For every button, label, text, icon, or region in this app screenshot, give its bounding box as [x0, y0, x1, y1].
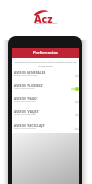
staticText: recibir avisos de pago	[14, 100, 36, 103]
button[interactable]: AVISOS 'RECICLAJE'	[12, 122, 79, 135]
button[interactable]: Toggle notifications	[71, 74, 79, 78]
staticText: Preferencias	[33, 50, 58, 56]
button[interactable]: Toggle notifications	[71, 100, 79, 104]
button[interactable]: AVISOS GENERALES	[12, 69, 79, 82]
staticText: recibir avisos de viajes	[14, 113, 36, 116]
staticText: recibir avisos flexible	[14, 87, 35, 90]
staticText: asociación de empresas	[35, 22, 58, 25]
staticText: recibir avisos generales	[14, 74, 38, 77]
button[interactable]: Toggle notifications	[71, 127, 79, 131]
staticText: AVISOS 'PAGO'	[14, 96, 38, 100]
staticText: Acz	[34, 12, 53, 26]
button[interactable]: Toggle notifications	[71, 87, 79, 91]
staticText: AVISOS 'RECICLAJE'	[14, 123, 46, 127]
staticText: AVISOS 'FLEXIBLE'	[14, 83, 44, 87]
button[interactable]: AVISOS 'VIAJES'	[12, 108, 79, 121]
button[interactable]: Toggle notifications	[71, 113, 79, 117]
button[interactable]: AVISOS 'PAGO'	[12, 95, 79, 108]
staticText: Desactiva las notificaciones que no quie…	[14, 60, 77, 68]
staticText: recibir avisos reciclaje	[14, 127, 36, 130]
staticText: AVISOS 'VIAJES'	[14, 109, 40, 113]
button[interactable]: AVISOS 'FLEXIBLE'	[12, 82, 79, 95]
staticText: AVISOS GENERALES	[14, 70, 46, 74]
